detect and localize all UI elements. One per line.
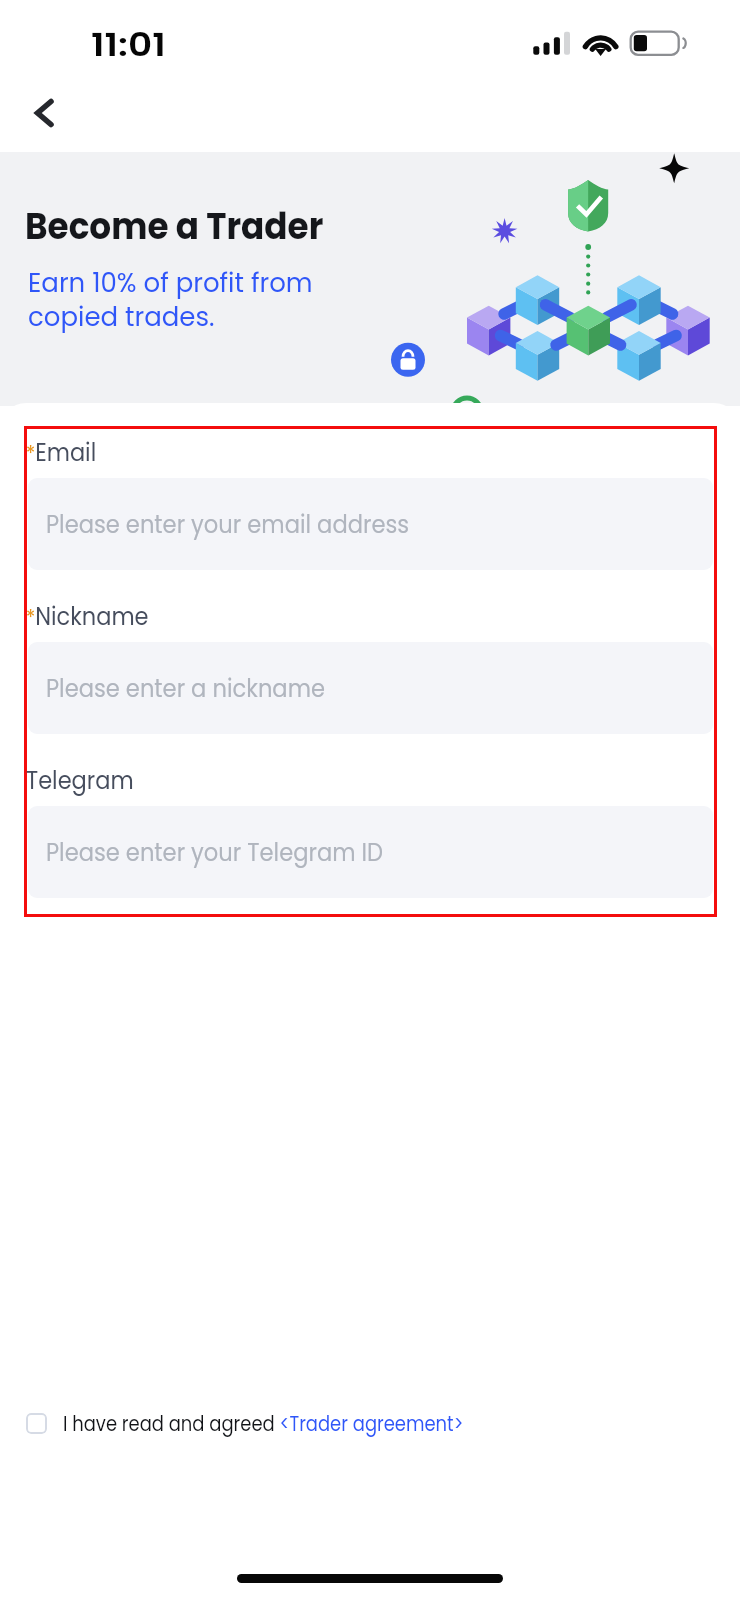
staticText: Please enter your email address [46,507,410,542]
staticText: Please enter your Telegram ID [46,835,384,870]
staticText: *Nickname [26,599,149,634]
staticText: 11:01 [91,22,166,67]
staticText: Become a Trader [25,200,324,252]
staticText: *Email [26,435,96,470]
staticText: Earn 10% of profit from copied trades. [28,265,313,335]
button[interactable]: Please enter your email address [28,478,713,570]
button[interactable]: I have read and agreed <Trader agreement… [26,1403,532,1444]
button[interactable]: Back [15,84,73,142]
staticText: I have read and agreed <Trader agreement… [63,1409,464,1438]
staticText: Telegram [26,763,134,798]
staticText: Please enter a nickname [46,671,326,706]
button[interactable]: Please enter your Telegram ID [28,806,713,898]
button[interactable]: Please enter a nickname [28,642,713,734]
